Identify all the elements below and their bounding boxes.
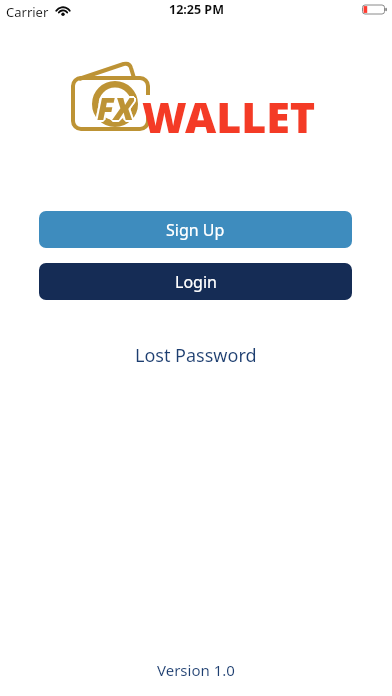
staticText: FX xyxy=(95,88,132,124)
staticText: WALLET xyxy=(142,87,316,146)
staticText: FX xyxy=(97,86,134,122)
staticText: FX xyxy=(96,89,133,125)
staticText: Version 1.0 xyxy=(157,660,235,680)
staticText: FX xyxy=(97,88,134,124)
staticText: FX xyxy=(97,90,134,126)
staticText: FX xyxy=(98,89,135,125)
button[interactable]: Sign Up xyxy=(39,211,352,248)
staticText: FX xyxy=(99,88,136,124)
staticText: Sign Up xyxy=(166,219,225,241)
button[interactable]: Login xyxy=(39,263,352,300)
staticText: FX xyxy=(96,87,133,123)
staticText: 12:25 PM xyxy=(169,1,224,18)
staticText: Carrier xyxy=(6,3,49,21)
button[interactable]: Lost Password xyxy=(135,343,257,368)
staticText: Login xyxy=(175,271,217,293)
staticText: FX xyxy=(98,87,135,123)
